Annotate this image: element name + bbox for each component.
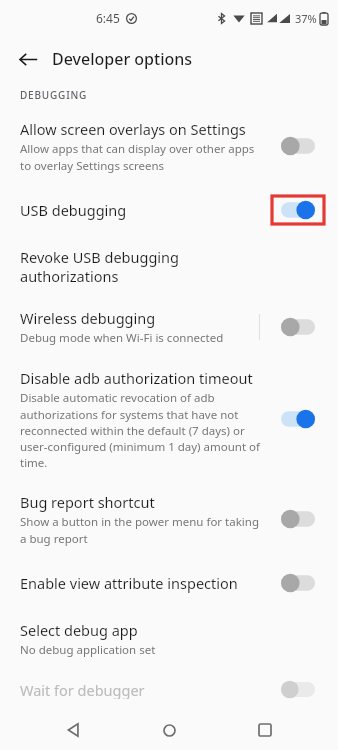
button[interactable]: Home	[147, 710, 191, 750]
button[interactable]: Back	[52, 710, 96, 750]
button[interactable]: Wireless debugging toggle	[272, 312, 324, 342]
staticText: Developer options	[52, 48, 193, 70]
button[interactable]: Recent apps	[243, 710, 287, 750]
staticText: No debug application set	[20, 642, 156, 658]
staticText: Enable view attribute inspection	[20, 573, 238, 593]
staticText: Revoke USB debugging authorizations	[20, 247, 270, 286]
staticText: Debug mode when Wi-Fi is connected	[20, 330, 224, 346]
staticText: USB debugging	[20, 200, 127, 220]
button[interactable]: Bug report shortcut	[0, 481, 338, 557]
button[interactable]: Enable view attribute inspection toggle	[272, 568, 324, 598]
staticText: DEBUGGING	[20, 88, 88, 102]
button[interactable]: Revoke USB debugging authorizations	[0, 236, 338, 297]
button[interactable]: USB debugging	[0, 184, 338, 236]
button[interactable]: Disable adb authorization timeout	[0, 357, 338, 481]
button[interactable]: Wait for debugger toggle	[272, 680, 324, 699]
button[interactable]: Select debug app	[0, 609, 338, 669]
staticText: 6:45	[96, 10, 120, 26]
button[interactable]: Bug report shortcut toggle	[272, 504, 324, 534]
staticText: 37%	[295, 11, 317, 26]
button[interactable]: Allow screen overlays on Settings toggle	[272, 131, 324, 161]
staticText: Disable adb authorization timeout	[20, 368, 253, 388]
staticText: Allow screen overlays on Settings	[20, 119, 246, 139]
button[interactable]: Wireless debugging	[0, 297, 338, 357]
staticText: Allow apps that can display over other a…	[20, 141, 264, 173]
staticText: Select debug app	[20, 620, 138, 640]
button[interactable]: Enable view attribute inspection	[0, 557, 338, 609]
staticText: Show a button in the power menu for taki…	[20, 514, 264, 546]
staticText: Disable automatic revocation of adb auth…	[20, 390, 264, 470]
button[interactable]: Allow screen overlays on Settings	[0, 108, 338, 184]
staticText: Bug report shortcut	[20, 492, 155, 512]
staticText: Wireless debugging	[20, 308, 156, 328]
button[interactable]: Disable adb authorization timeout toggle	[272, 404, 324, 434]
button[interactable]: USB debugging toggle	[272, 195, 324, 225]
staticText: Wait for debugger	[20, 680, 145, 699]
button[interactable]: Wait for debugger	[0, 669, 338, 710]
button[interactable]: Back	[10, 41, 46, 77]
